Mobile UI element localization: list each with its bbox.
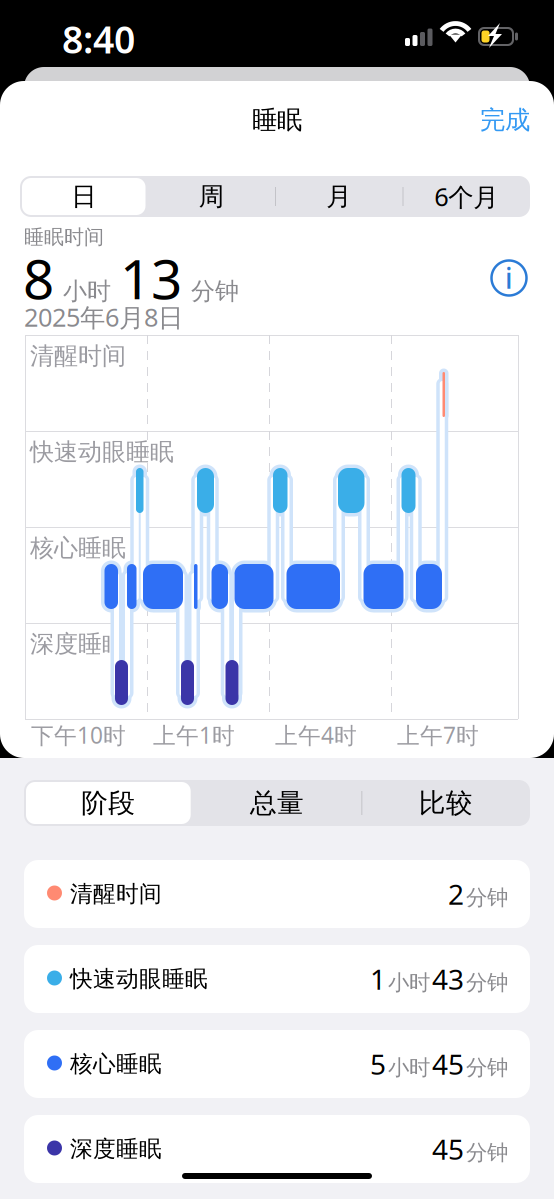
button[interactable]: 核心睡眠 (0, 0, 554, 1199)
staticText: 分钟 (191, 276, 239, 306)
staticText: 深度睡眠 (30, 629, 126, 659)
button[interactable]: 周 (147, 176, 275, 217)
staticText: 分钟 (466, 885, 508, 911)
button[interactable]: 清醒时间 (0, 0, 554, 1199)
staticText: 45 (432, 1045, 464, 1083)
staticText: 清醒时间 (30, 341, 126, 371)
staticText: 比较 (419, 787, 473, 819)
staticText: 分钟 (466, 1055, 508, 1081)
staticText: 睡眠 (252, 104, 302, 135)
staticText: 分钟 (466, 1140, 508, 1166)
staticText: 阶段 (81, 787, 135, 819)
staticText: 分钟 (466, 970, 508, 996)
staticText: 小时 (63, 276, 111, 306)
staticText: 总量 (250, 787, 304, 819)
staticText: 2025年6月8日 (24, 300, 183, 334)
staticText: 核心睡眠 (70, 1050, 162, 1078)
staticText: 日 (71, 181, 96, 212)
button[interactable]: 完成 (436, 98, 530, 142)
staticText: 2 (448, 875, 464, 913)
staticText: 1 (370, 960, 386, 998)
button[interactable]: 信息 (486, 255, 532, 301)
staticText: 上午4时 (275, 720, 357, 750)
staticText: 完成 (480, 104, 530, 135)
staticText: 月 (326, 181, 351, 212)
button[interactable]: 6个月 (402, 176, 530, 217)
staticText: 8:40 (62, 14, 135, 64)
staticText: 5 (370, 1045, 386, 1083)
staticText: 小时 (388, 970, 430, 996)
staticText: i (505, 259, 513, 297)
staticText: 6个月 (434, 180, 498, 213)
button[interactable]: 阶段 (24, 780, 193, 826)
staticText: 13 (120, 242, 182, 314)
staticText: 上午1时 (153, 720, 235, 750)
staticText: 周 (199, 181, 224, 212)
button[interactable]: 深度睡眠 (0, 0, 554, 1199)
staticText: 上午7时 (397, 720, 479, 750)
staticText: 小时 (388, 1055, 430, 1081)
staticText: 43 (432, 960, 464, 998)
staticText: 8 (23, 242, 54, 314)
staticText: 45 (432, 1130, 464, 1168)
button[interactable]: 月 (275, 176, 402, 217)
staticText: 核心睡眠 (30, 533, 126, 563)
staticText: 快速动眼睡眠 (70, 965, 208, 993)
staticText: 深度睡眠 (70, 1135, 162, 1163)
button[interactable]: 比较 (361, 780, 530, 826)
button[interactable]: 快速动眼睡眠 (0, 0, 554, 1199)
staticText: 下午10时 (31, 720, 126, 750)
staticText: 清醒时间 (70, 880, 162, 908)
staticText: 快速动眼睡眠 (30, 437, 174, 467)
button[interactable]: 日 (20, 176, 147, 217)
staticText: 睡眠时间 (24, 225, 104, 249)
button[interactable]: 总量 (193, 780, 361, 826)
